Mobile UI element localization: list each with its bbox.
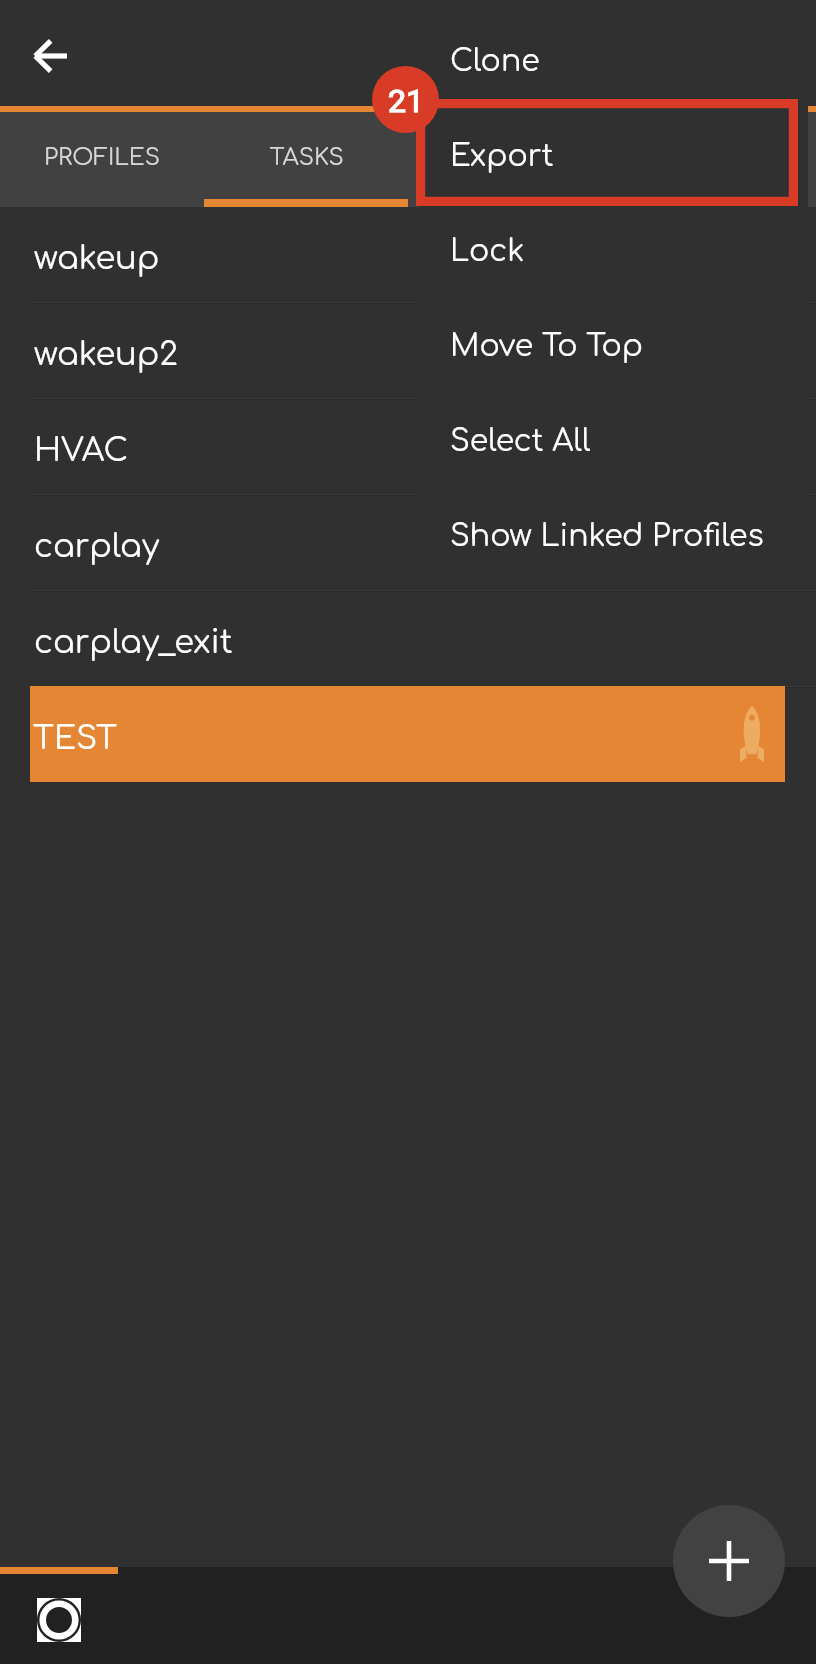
button[interactable]: wakeup — [0, 207, 816, 303]
button[interactable]: PROFILES — [0, 112, 204, 207]
staticText: wakeup — [34, 241, 160, 277]
button[interactable]: HVAC — [0, 399, 816, 495]
button[interactable]: TEST — [0, 687, 816, 783]
button[interactable]: wakeup2 — [0, 303, 816, 399]
staticText: Show Linked Profiles — [450, 520, 764, 553]
button[interactable]: Move To Top — [418, 293, 808, 388]
button[interactable]: TASKS — [204, 112, 408, 207]
staticText: TASKS — [269, 145, 344, 171]
button[interactable]: Export — [418, 103, 808, 198]
button[interactable]: Select All — [418, 388, 808, 483]
button[interactable]: Add — [673, 1505, 785, 1617]
button[interactable]: Home — [0, 1567, 118, 1664]
staticText: Clone — [450, 45, 540, 78]
staticText: Lock — [450, 235, 525, 268]
button[interactable]: Back — [2, 8, 98, 104]
button[interactable]: carplay — [0, 495, 816, 591]
staticText: Export — [450, 140, 554, 173]
staticText: TEST — [33, 721, 117, 757]
staticText: HVAC — [34, 433, 129, 469]
button[interactable]: Lock — [418, 198, 808, 293]
staticText: PROFILES — [44, 145, 160, 171]
button[interactable]: Show Linked Profiles — [418, 483, 808, 578]
staticText: carplay_exit — [34, 625, 233, 661]
button[interactable]: carplay_exit — [0, 591, 816, 687]
button[interactable]: Clone — [418, 8, 808, 103]
staticText: Select All — [450, 425, 591, 458]
staticText: wakeup2 — [34, 337, 178, 373]
staticText: Move To Top — [450, 330, 643, 363]
staticText: carplay — [34, 529, 160, 565]
staticText: 21 — [388, 82, 424, 120]
